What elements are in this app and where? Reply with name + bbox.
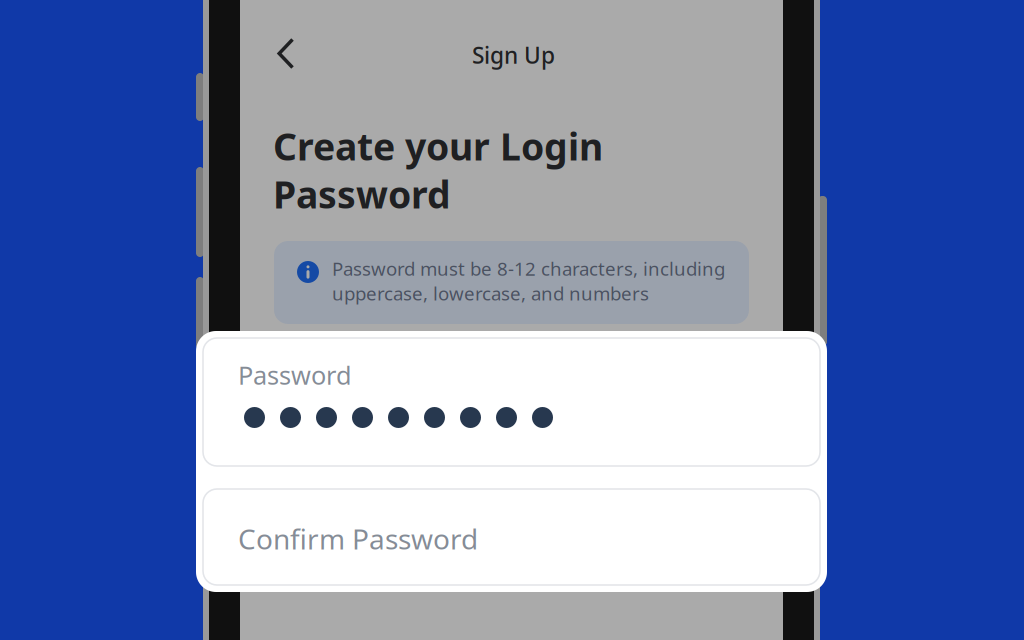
staticText: Create your Login <box>273 121 603 171</box>
staticText: Password <box>238 358 352 392</box>
button[interactable]: Back <box>263 31 309 77</box>
button[interactable]: Password <box>203 338 820 466</box>
staticText: Password must be 8-12 characters, includ… <box>332 256 725 306</box>
staticText: Password <box>273 169 451 219</box>
staticText: Sign Up <box>472 40 555 70</box>
staticText: Confirm Password <box>238 520 478 557</box>
button[interactable]: Confirm Password <box>203 489 820 585</box>
